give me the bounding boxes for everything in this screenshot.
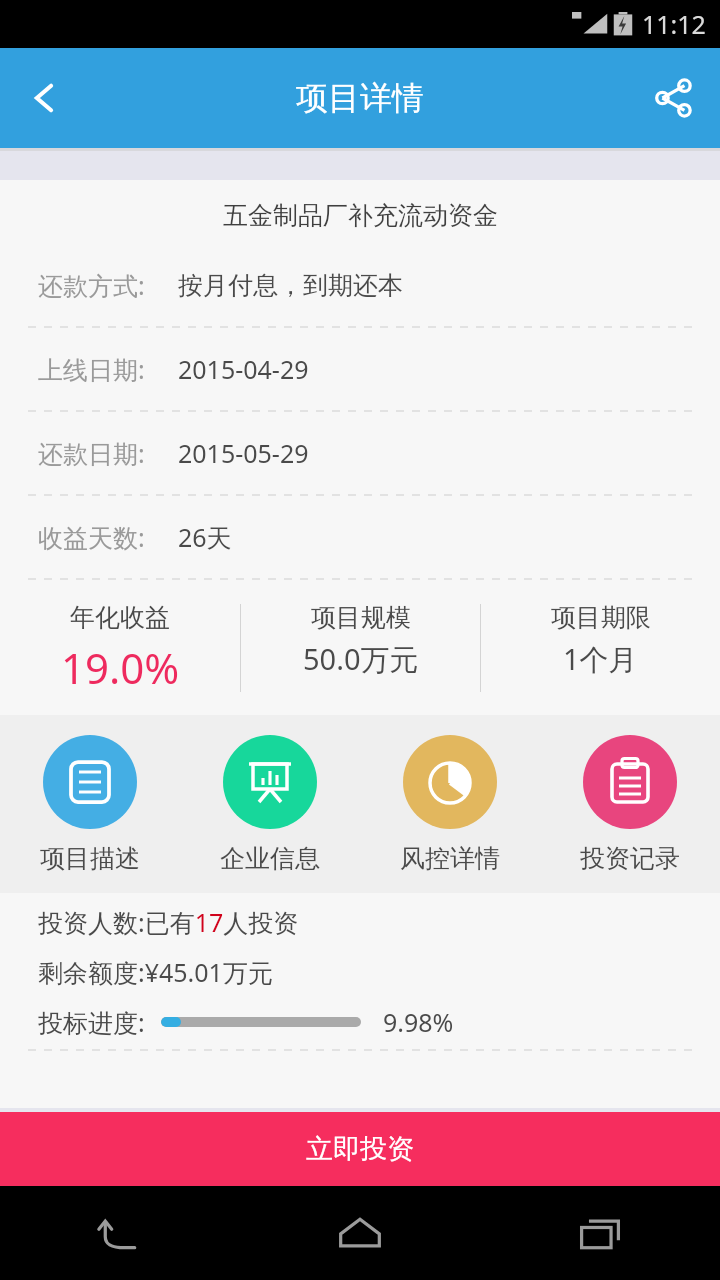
staticText: 2015-05-29 (178, 436, 309, 470)
button[interactable]: 风控详情 (360, 715, 540, 893)
staticText: 项目描述 (40, 843, 140, 874)
staticText: 上线日期: (38, 352, 145, 386)
button[interactable]: 企业信息 (180, 715, 360, 893)
staticText: 剩余额度:¥45.01万元 (38, 955, 273, 989)
staticText: 投资人数:已有17人投资 (38, 905, 299, 939)
staticText: 投资记录 (580, 843, 680, 874)
button[interactable]: 投资记录 (540, 715, 720, 893)
staticText: 企业信息 (220, 843, 320, 874)
staticText: 还款方式: (38, 268, 145, 302)
button[interactable]: Recents (480, 1186, 720, 1280)
staticText: 项目详情 (296, 78, 424, 118)
staticText: 11:12 (642, 7, 706, 41)
button[interactable]: 立即投资 (0, 1112, 720, 1186)
staticText: 9.98% (383, 1005, 454, 1039)
staticText: 年化收益 (70, 602, 170, 633)
button[interactable]: Back (0, 48, 90, 148)
staticText: 按月付息，到期还本 (178, 270, 403, 301)
button[interactable]: Share (626, 48, 720, 148)
staticText: 50.0万元 (303, 639, 419, 679)
button[interactable]: Back (0, 1186, 240, 1280)
button[interactable]: Home (240, 1186, 480, 1280)
staticText: 立即投资 (306, 1132, 414, 1166)
staticText: 2015-04-29 (178, 352, 309, 386)
staticText: 收益天数: (38, 520, 145, 554)
staticText: 1个月 (563, 639, 638, 679)
staticText: 投标进度: (38, 1005, 145, 1039)
staticText: 五金制品厂补充流动资金 (223, 200, 498, 231)
staticText: 风控详情 (400, 843, 500, 874)
staticText: 26天 (178, 520, 232, 554)
staticText: 还款日期: (38, 436, 145, 470)
staticText: 19.0% (61, 639, 180, 696)
staticText: 项目规模 (311, 602, 411, 633)
staticText: 项目期限 (551, 602, 651, 633)
button[interactable]: 项目描述 (0, 715, 180, 893)
